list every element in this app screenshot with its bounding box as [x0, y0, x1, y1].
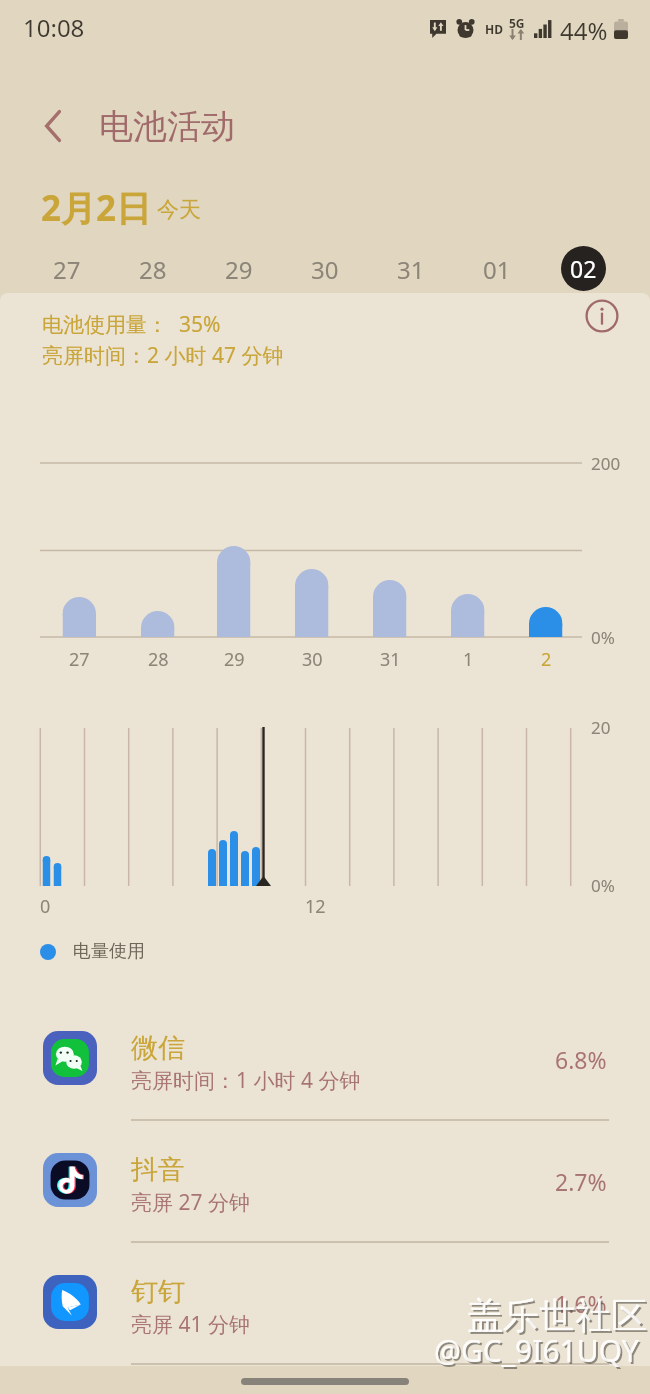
staticText: 盖乐世社区	[469, 1295, 649, 1340]
button[interactable]: 电量使用	[34, 936, 145, 966]
staticText: 亮屏 27 分钟	[131, 1188, 250, 1217]
staticText: 抖音	[131, 1153, 185, 1187]
staticText: 30	[302, 647, 323, 672]
button[interactable]: 29	[217, 247, 261, 291]
staticText: 2	[541, 647, 552, 672]
staticText: 盖乐世社区	[467, 1293, 647, 1338]
staticText: 27	[53, 253, 81, 286]
staticText: 亮屏 41 分钟	[131, 1310, 250, 1339]
staticText: 电池活动	[99, 105, 235, 148]
staticText: 200	[591, 452, 621, 475]
staticText: 12	[305, 894, 326, 919]
staticText: 电量使用	[73, 940, 145, 963]
staticText: 0%	[591, 874, 615, 897]
button[interactable]: Info	[582, 296, 622, 336]
staticText: 29	[225, 253, 253, 286]
button[interactable]: 28	[131, 247, 175, 291]
button[interactable]: 02	[561, 246, 606, 291]
staticText: 29	[224, 647, 245, 672]
staticText: 28	[139, 253, 167, 286]
staticText: 02	[570, 253, 597, 284]
staticText: 44%	[560, 14, 608, 47]
button[interactable]: 30	[303, 247, 347, 291]
staticText: 2.7%	[555, 1166, 607, 1197]
staticText: 01	[483, 253, 511, 286]
staticText: 28	[148, 647, 169, 672]
staticText: @GC_9I61UQY	[436, 1332, 641, 1373]
staticText: 31	[397, 253, 425, 286]
staticText: 5G	[509, 15, 525, 31]
staticText: 电池使用量： 35%	[42, 310, 221, 339]
staticText: 27	[69, 647, 90, 672]
staticText: 20	[591, 716, 611, 739]
button[interactable]: 抖音	[0, 1135, 650, 1257]
staticText: 0	[40, 894, 51, 919]
staticText: 亮屏时间：1 小时 4 分钟	[131, 1066, 361, 1095]
staticText: 0%	[591, 626, 615, 649]
staticText: 2月2日	[41, 184, 152, 232]
staticText: HD	[485, 21, 503, 37]
staticText: 10:08	[23, 11, 85, 44]
staticText: 6.8%	[555, 1044, 607, 1075]
staticText: 31	[380, 647, 401, 672]
button[interactable]: Back	[29, 102, 77, 150]
button[interactable]: 01	[475, 247, 519, 291]
button[interactable]: 31	[389, 247, 433, 291]
staticText: 30	[311, 253, 339, 286]
button[interactable]: 27	[45, 247, 89, 291]
staticText: @GC_9I61UQY	[434, 1330, 639, 1371]
button[interactable]: 钉钉	[0, 1257, 650, 1379]
staticText: 微信	[131, 1031, 185, 1065]
staticText: 今天	[157, 196, 201, 224]
staticText: 1.6%	[555, 1288, 607, 1319]
button[interactable]: 微信	[0, 1013, 650, 1135]
staticText: 亮屏时间：2 小时 47 分钟	[42, 341, 284, 370]
staticText: 钉钉	[131, 1275, 185, 1309]
staticText: 1	[463, 647, 474, 672]
